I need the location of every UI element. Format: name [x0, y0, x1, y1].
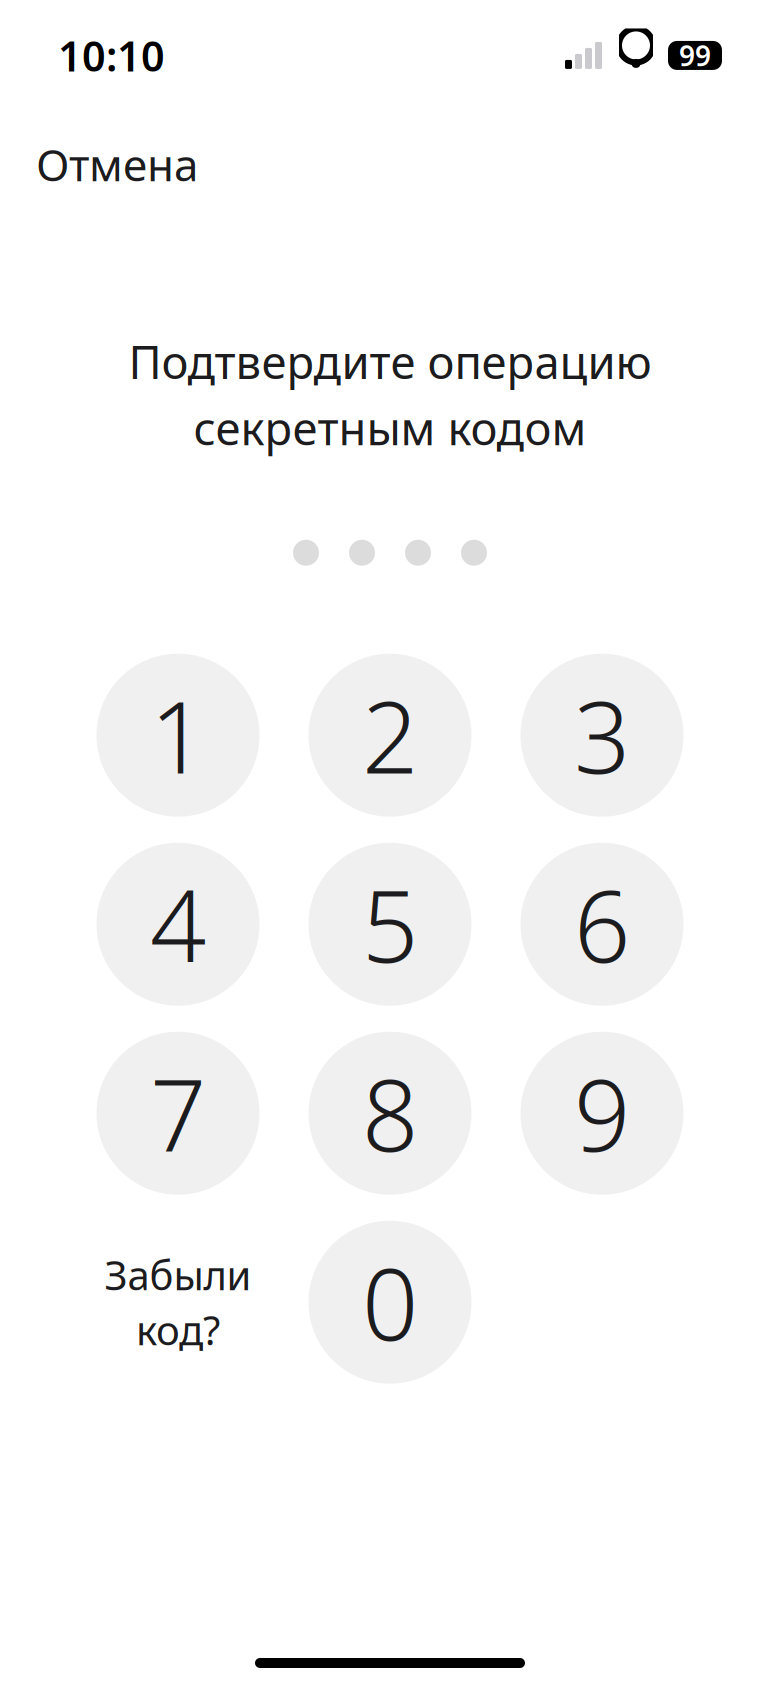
staticText: 1	[150, 670, 206, 801]
button[interactable]: 8	[308, 1032, 471, 1195]
button[interactable]: 6	[520, 843, 683, 1006]
button[interactable]: Отмена	[36, 127, 198, 201]
staticText: секретным кодом	[193, 397, 586, 458]
button[interactable]: 4	[96, 843, 259, 1006]
button[interactable]: 1	[96, 654, 259, 817]
staticText: 2	[362, 670, 418, 801]
staticText: 5	[362, 859, 418, 990]
button[interactable]: 2	[308, 654, 471, 817]
staticText: 99	[679, 37, 711, 74]
button[interactable]: Забыли	[96, 1221, 259, 1384]
staticText: 8	[362, 1048, 418, 1179]
staticText: 7	[150, 1048, 206, 1179]
staticText: Забыли	[104, 1248, 251, 1301]
button[interactable]: 3	[520, 654, 683, 817]
staticText: код?	[136, 1303, 220, 1356]
staticText: 6	[574, 859, 630, 990]
staticText: 3	[574, 670, 630, 801]
button[interactable]: 7	[96, 1032, 259, 1195]
staticText: 10:10	[58, 28, 165, 83]
staticText: Подтвердите операцию	[128, 331, 651, 391]
staticText: 9	[574, 1048, 630, 1179]
staticText: Отмена	[36, 135, 198, 193]
staticText: 0	[362, 1237, 418, 1368]
button[interactable]: 0	[308, 1221, 471, 1384]
button[interactable]: 9	[520, 1032, 683, 1195]
staticText: 4	[150, 859, 206, 990]
button[interactable]: 5	[308, 843, 471, 1006]
